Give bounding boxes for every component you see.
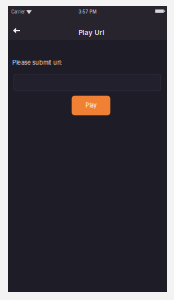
staticText: Carrier [11,9,25,14]
button[interactable]: Back [8,18,26,40]
staticText: Play [85,102,96,109]
staticText: 3:57 PM [78,9,96,15]
staticText: Please submit url: [12,59,62,66]
button[interactable]: Play [72,96,110,115]
staticText: Play Url [78,28,104,37]
